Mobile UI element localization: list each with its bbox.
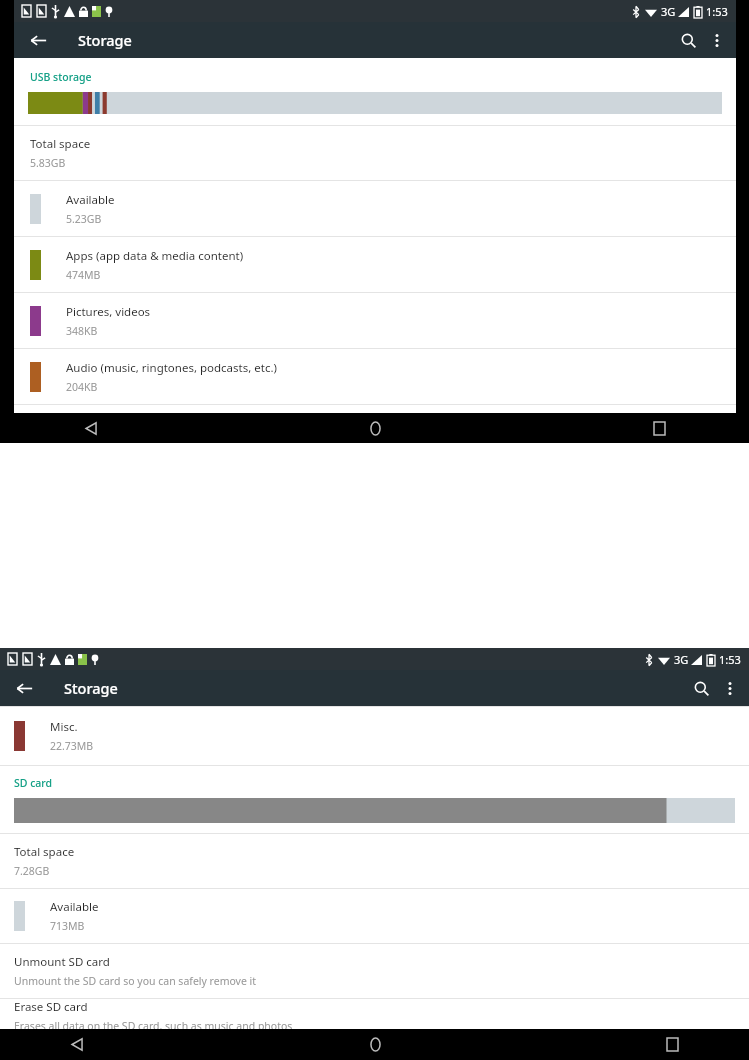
staticText: 5.23GB (66, 212, 102, 226)
button[interactable]: Erase SD card (0, 999, 749, 1029)
staticText: 713MB (50, 919, 85, 933)
staticText: Erases all data on the SD card, such as … (14, 1019, 293, 1029)
staticText: 3G (661, 4, 676, 19)
staticText: 1:53 (719, 652, 741, 667)
staticText: Apps (app data & media content) (66, 248, 244, 264)
button[interactable]: Back (74, 413, 108, 443)
staticText: Total space (30, 136, 91, 152)
staticText: 204KB (66, 380, 98, 394)
button[interactable]: Unmount SD card (0, 944, 749, 998)
button[interactable]: Audio (music, ringtones, podcasts, etc.) (14, 349, 736, 404)
staticText: Audio (music, ringtones, podcasts, etc.) (66, 360, 277, 376)
button[interactable]: More options (716, 674, 744, 702)
button[interactable]: Back (10, 674, 38, 702)
button[interactable]: Back (60, 1029, 94, 1060)
staticText: Misc. (50, 719, 78, 735)
staticText: 22.73MB (50, 739, 94, 753)
staticText: Available (50, 899, 99, 915)
staticText: Storage (78, 30, 132, 50)
staticText: Available (66, 192, 115, 208)
staticText: 348KB (66, 324, 98, 338)
staticText: Total space (14, 844, 75, 860)
button[interactable]: Total space (0, 834, 749, 888)
button[interactable]: Apps (app data & media content) (14, 237, 736, 292)
staticText: 3G (674, 652, 689, 667)
staticText: 1:53 (706, 4, 728, 19)
staticText: 7.28GB (14, 864, 50, 878)
button[interactable]: Home (358, 413, 392, 443)
button[interactable]: More options (703, 26, 731, 54)
button[interactable]: Available (0, 889, 749, 943)
staticText: Unmount the SD card so you can safely re… (14, 974, 257, 988)
button[interactable]: Recents (642, 413, 676, 443)
staticText: USB storage (30, 70, 92, 84)
button[interactable]: Search (673, 25, 703, 55)
button[interactable]: Search (686, 673, 716, 703)
staticText: Pictures, videos (66, 304, 151, 320)
button[interactable]: Available (14, 181, 736, 236)
staticText: Unmount SD card (14, 954, 110, 970)
staticText: Erase SD card (14, 999, 88, 1015)
button[interactable]: Home (358, 1029, 392, 1060)
button[interactable]: Misc. (0, 707, 749, 765)
staticText: 474MB (66, 268, 101, 282)
staticText: Storage (64, 678, 118, 698)
button[interactable]: Back (24, 26, 52, 54)
button[interactable]: Total space (14, 126, 736, 180)
button[interactable]: Recents (655, 1029, 689, 1060)
staticText: SD card (14, 776, 53, 790)
button[interactable]: Pictures, videos (14, 293, 736, 348)
staticText: 5.83GB (30, 156, 66, 170)
